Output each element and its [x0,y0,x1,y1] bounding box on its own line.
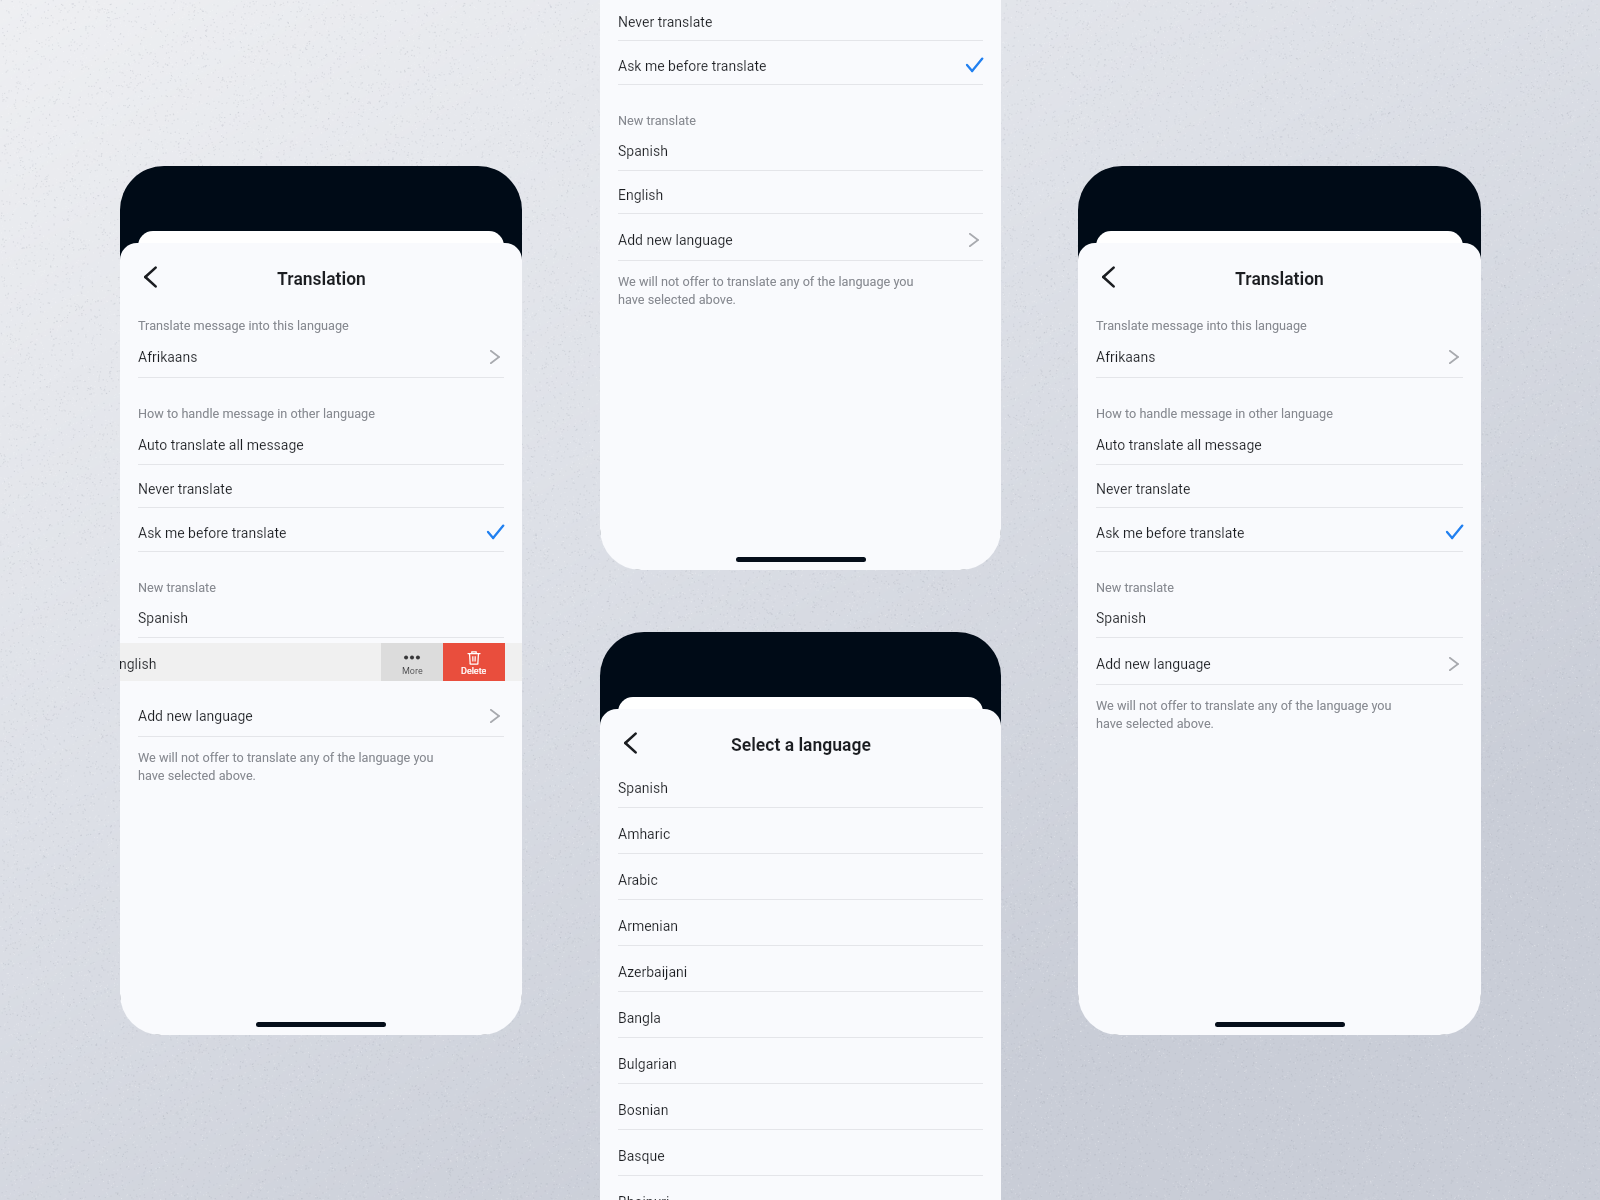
button[interactable]: Never translate [1096,465,1463,507]
staticText: Bhojpuri [618,1194,670,1200]
button[interactable]: English [618,171,983,213]
staticText: Never translate [1096,481,1191,497]
staticText: More [402,666,423,677]
staticText: Basque [618,1148,665,1164]
button[interactable]: Basque [618,1130,983,1175]
staticText: Ask me before translate [1096,525,1245,541]
staticText: How to handle message in other language [138,406,375,421]
button[interactable]: Delete [443,643,505,681]
staticText: How to handle message in other language [1096,406,1333,421]
staticText: Bangla [618,1010,661,1026]
button[interactable]: Spanish [618,762,983,807]
staticText: Afrikaans [138,349,198,365]
staticText: Translate message into this language [138,318,349,333]
button[interactable]: More [381,643,443,681]
staticText: Add new language [1096,656,1211,672]
staticText: Spanish [618,143,668,159]
staticText: Auto translate all message [1096,437,1262,453]
staticText: New translate [1096,580,1174,595]
staticText: Amharic [618,826,671,842]
staticText: Translation [277,269,366,290]
staticText: nglish [120,656,157,672]
button[interactable]: Amharic [618,808,983,853]
button[interactable]: Bangla [618,992,983,1037]
button[interactable]: Bhojpuri [618,1176,983,1200]
staticText: Azerbaijani [618,964,688,980]
staticText: We will not offer to translate any of th… [1096,698,1396,731]
button[interactable]: Back [125,255,169,299]
staticText: We will not offer to translate any of th… [138,750,438,783]
button[interactable]: Back [605,721,649,765]
button[interactable]: Azerbaijani [618,946,983,991]
button[interactable]: Add new language [138,690,504,736]
staticText: Spanish [1096,610,1146,626]
staticText: Delete [461,666,487,677]
button[interactable]: Never translate [138,465,504,507]
staticText: New translate [618,113,696,128]
button[interactable]: Ask me before translate [1096,508,1463,551]
button[interactable]: nglish [120,643,370,681]
staticText: Select a language [731,735,871,756]
button[interactable]: Never translate [618,0,983,40]
button[interactable]: Armenian [618,900,983,945]
button[interactable]: Afrikaans [1096,331,1463,377]
button[interactable]: Ask me before translate [618,41,983,84]
staticText: New translate [138,580,216,595]
staticText: Never translate [618,14,713,30]
button[interactable]: Spanish [618,126,983,170]
staticText: Afrikaans [1096,349,1156,365]
button[interactable]: Back [1083,255,1127,299]
button[interactable]: Arabic [618,854,983,899]
button[interactable]: Bosnian [618,1084,983,1129]
staticText: Translate message into this language [1096,318,1307,333]
staticText: We will not offer to translate any of th… [618,274,918,307]
staticText: Translation [1235,269,1324,290]
staticText: Add new language [618,232,733,248]
button[interactable]: Spanish [138,593,504,637]
button[interactable]: Ask me before translate [138,508,504,551]
button[interactable]: Add new language [1096,638,1463,684]
button[interactable]: Add new language [618,214,983,260]
staticText: Ask me before translate [618,58,767,74]
staticText: Bosnian [618,1102,669,1118]
staticText: Bulgarian [618,1056,677,1072]
staticText: English [618,187,664,203]
staticText: Spanish [138,610,188,626]
button[interactable]: Bulgarian [618,1038,983,1083]
staticText: Spanish [618,780,668,796]
staticText: Auto translate all message [138,437,304,453]
staticText: Never translate [138,481,233,497]
staticText: Add new language [138,708,253,724]
staticText: Armenian [618,918,679,934]
button[interactable]: Auto translate all message [138,419,504,464]
staticText: Ask me before translate [138,525,287,541]
button[interactable]: Auto translate all message [1096,419,1463,464]
staticText: Arabic [618,872,658,888]
button[interactable]: Spanish [1096,593,1463,637]
button[interactable]: Afrikaans [138,331,504,377]
